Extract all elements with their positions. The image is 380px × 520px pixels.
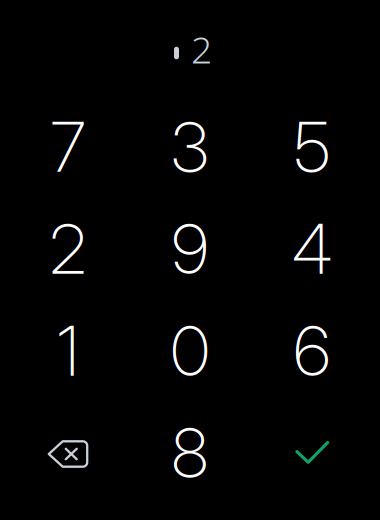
button[interactable]: 3 xyxy=(129,96,251,198)
staticText: 7 xyxy=(50,106,85,188)
button[interactable]: Delete xyxy=(7,402,129,504)
button[interactable]: 0 xyxy=(129,300,251,402)
staticText: 0 xyxy=(170,310,209,392)
button[interactable]: 5 xyxy=(251,96,373,198)
button[interactable]: 6 xyxy=(251,300,373,402)
staticText: 9 xyxy=(171,208,208,290)
staticText: 8 xyxy=(171,412,208,494)
staticText: 2 xyxy=(49,208,86,290)
staticText: 4 xyxy=(292,208,332,290)
button[interactable]: 7 xyxy=(7,96,129,198)
button[interactable]: 2 xyxy=(7,198,129,300)
staticText: 2 xyxy=(191,24,212,74)
staticText: 1 xyxy=(57,310,79,392)
staticText: 3 xyxy=(171,106,209,188)
staticText: 5 xyxy=(294,106,330,188)
button[interactable]: 1 xyxy=(7,300,129,402)
staticText: 6 xyxy=(293,310,330,392)
button[interactable]: 8 xyxy=(129,402,251,504)
button[interactable]: Confirm xyxy=(251,402,373,504)
button[interactable]: 9 xyxy=(129,198,251,300)
button[interactable]: 4 xyxy=(251,198,373,300)
